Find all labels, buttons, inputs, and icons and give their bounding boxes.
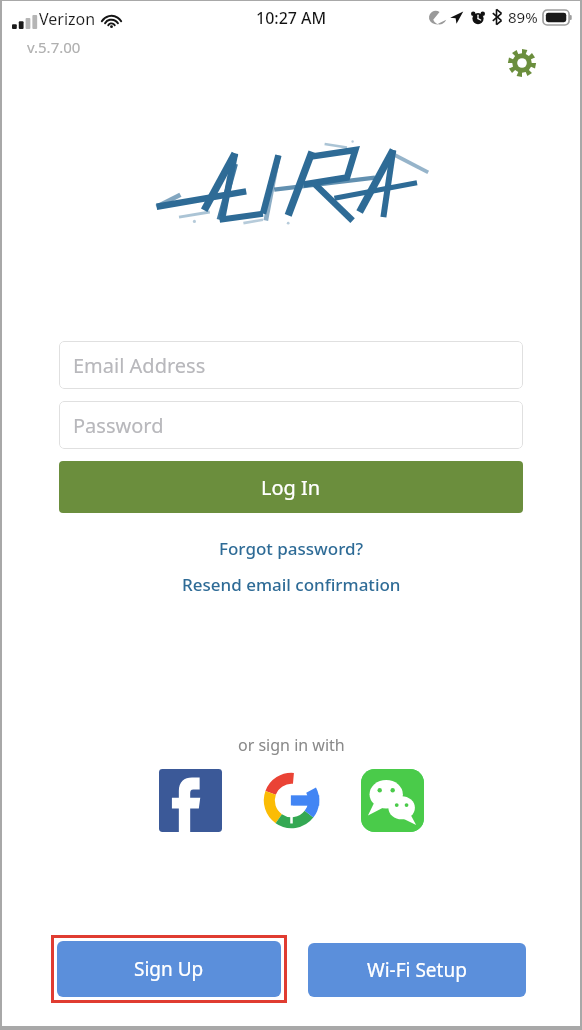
button[interactable]: Settings [502, 43, 542, 83]
staticText: Wi-Fi Setup [367, 957, 467, 983]
button[interactable]: Resend email confirmation [59, 573, 523, 596]
staticText: Log In [261, 474, 321, 501]
button[interactable]: Password [59, 401, 523, 449]
staticText: 89% [508, 7, 538, 27]
staticText: Email Address [73, 352, 206, 379]
staticText: or sign in with [238, 734, 345, 756]
staticText: Sign Up [134, 956, 204, 982]
button[interactable]: Sign in with Facebook [159, 769, 222, 832]
staticText: Forgot password? [219, 537, 364, 560]
staticText: Resend email confirmation [182, 573, 401, 596]
staticText: 10:27 AM [256, 7, 327, 29]
button[interactable]: Log In [59, 461, 523, 513]
button[interactable]: Wi-Fi Setup [308, 943, 526, 997]
staticText: Verizon [39, 8, 96, 30]
staticText: Password [73, 412, 164, 439]
button[interactable]: Sign in with Google [260, 769, 323, 832]
button[interactable]: Forgot password? [59, 537, 523, 560]
button[interactable]: Sign Up [57, 941, 281, 997]
button[interactable]: Sign in with WeChat [361, 769, 424, 832]
button[interactable]: Email Address [59, 341, 523, 389]
staticText: v.5.7.00 [27, 37, 81, 57]
